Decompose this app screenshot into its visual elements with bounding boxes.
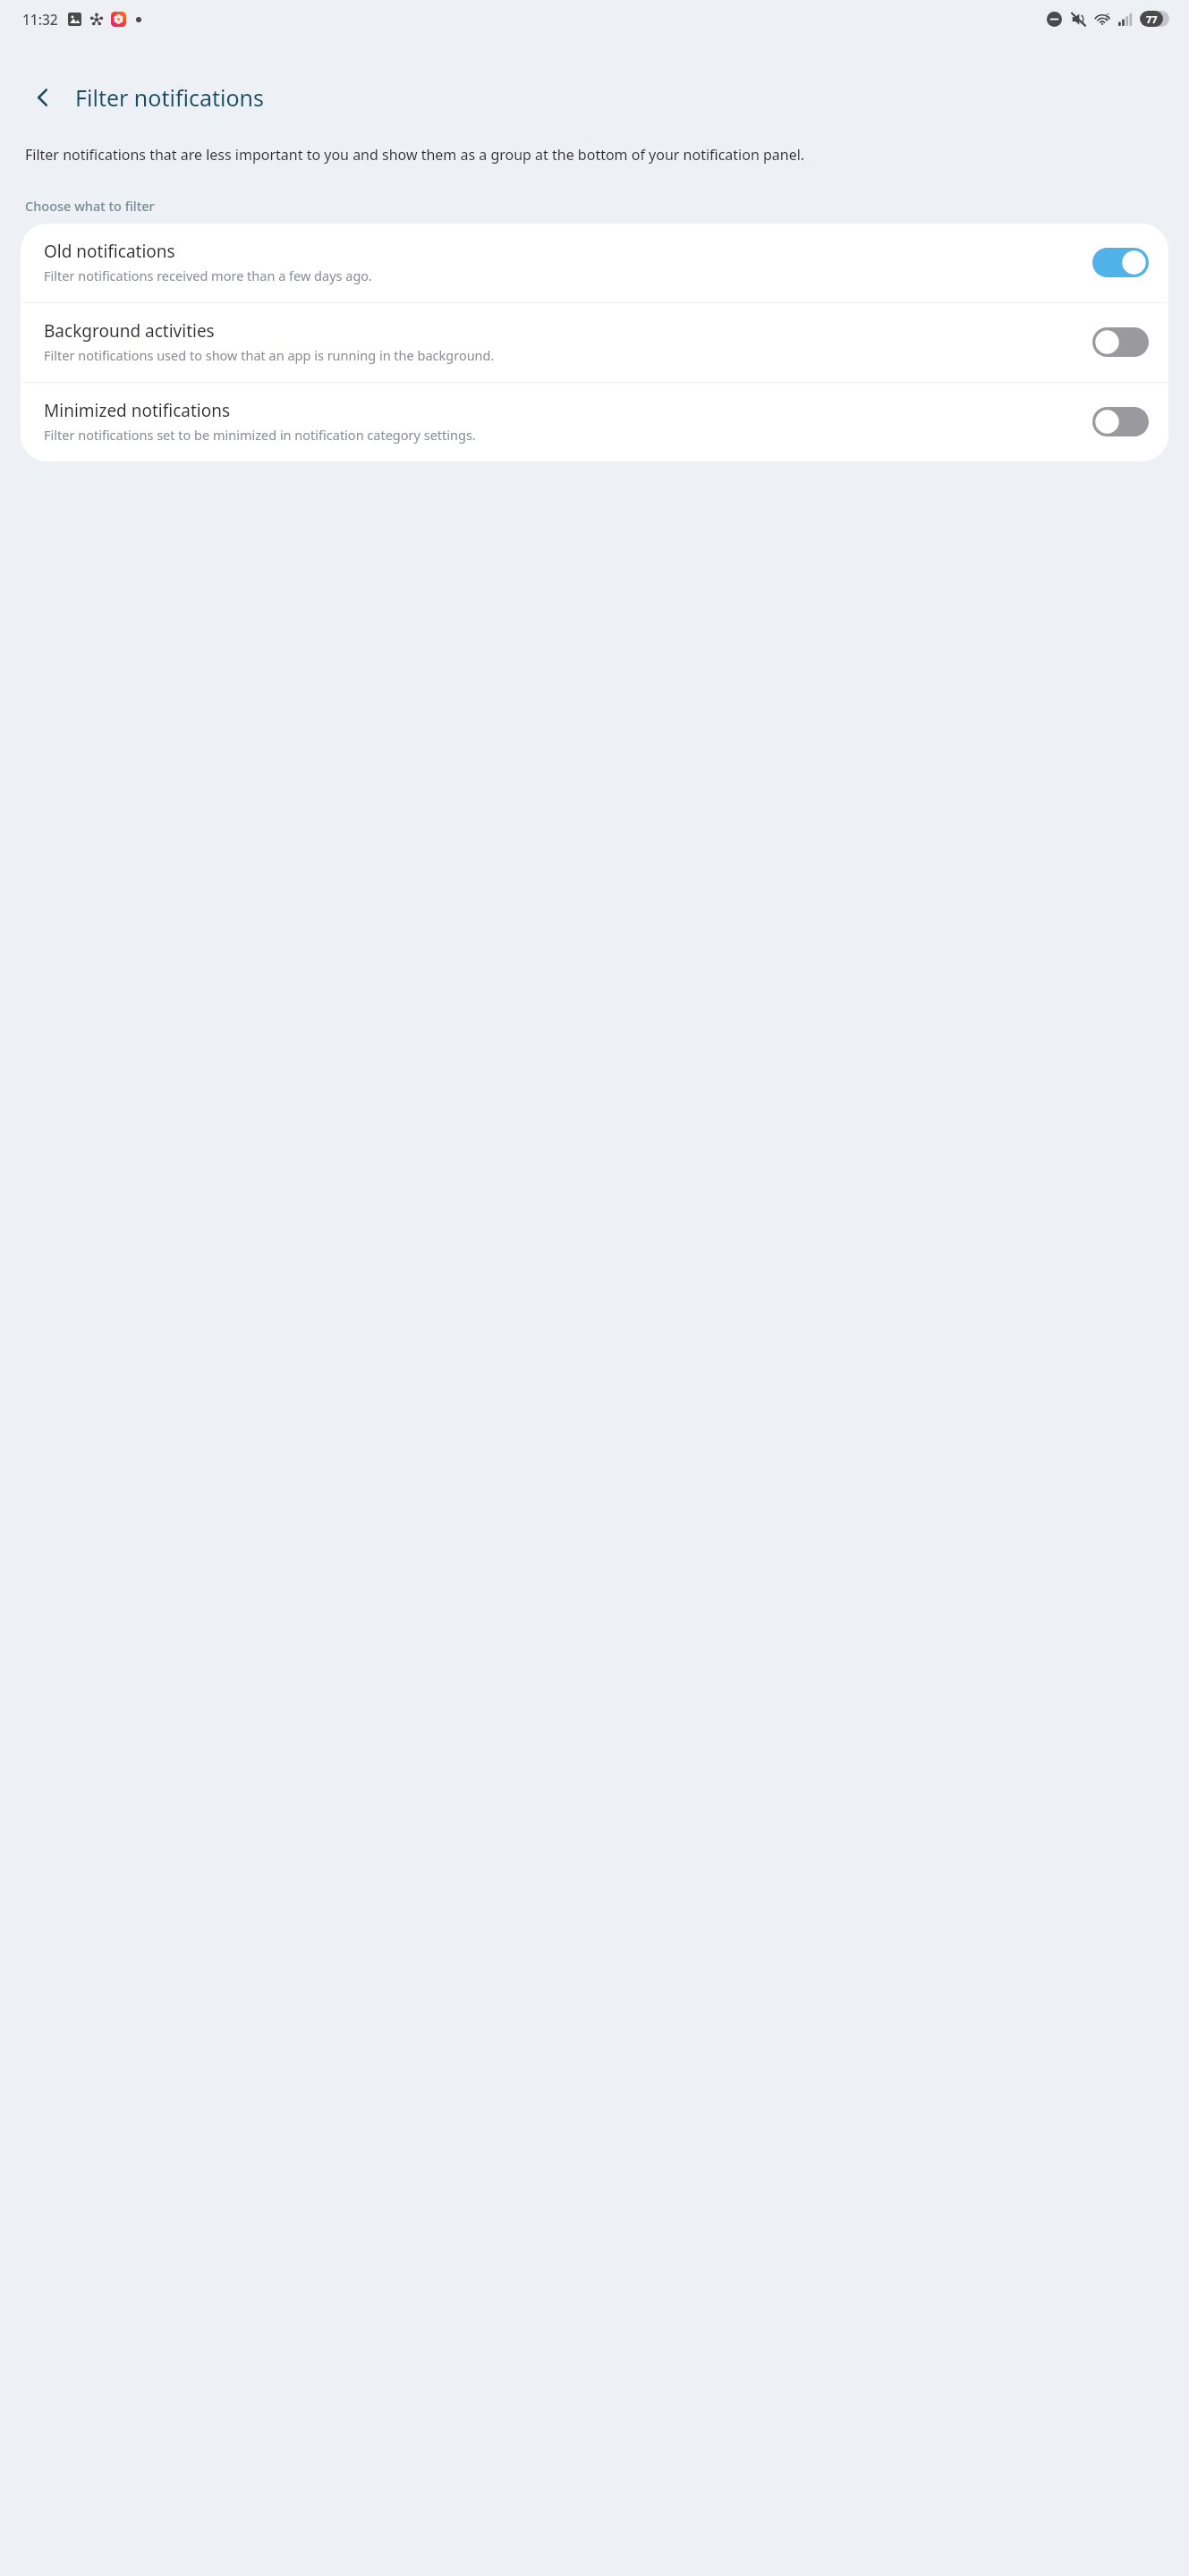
staticText: Choose what to filter bbox=[25, 197, 155, 215]
staticText: 77 bbox=[1146, 13, 1158, 26]
staticText: Filter notifications used to show that a… bbox=[44, 346, 495, 364]
staticText: 6 bbox=[1106, 12, 1110, 21]
button[interactable]: Off bbox=[1092, 327, 1149, 357]
staticText: Minimized notifications bbox=[44, 399, 231, 422]
button[interactable]: Minimized notifications bbox=[21, 383, 1168, 462]
button[interactable]: Back bbox=[21, 76, 64, 119]
staticText: Filter notifications set to be minimized… bbox=[44, 426, 476, 444]
staticText: Background activities bbox=[44, 319, 215, 343]
staticText: Filter notifications received more than … bbox=[44, 267, 372, 284]
button[interactable]: On bbox=[1092, 248, 1149, 277]
button[interactable]: Background activities bbox=[21, 303, 1168, 382]
staticText: 11:32 bbox=[22, 10, 58, 29]
button[interactable]: Old notifications bbox=[21, 224, 1168, 302]
staticText: Old notifications bbox=[44, 240, 175, 263]
staticText: Filter notifications that are less impor… bbox=[25, 145, 1162, 165]
button[interactable]: Off bbox=[1092, 407, 1149, 436]
staticText: Filter notifications bbox=[75, 82, 264, 113]
